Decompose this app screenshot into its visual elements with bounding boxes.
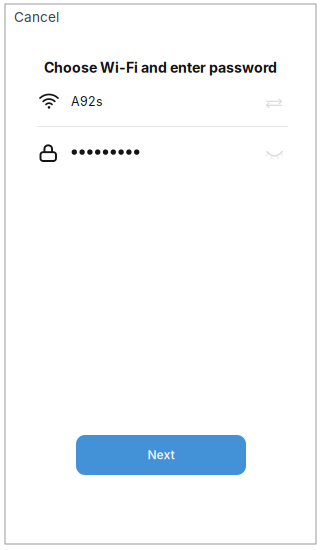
button[interactable]: Change network [259,92,289,115]
staticText: Choose Wi-Fi and enter password [44,59,277,76]
staticText: Next [147,448,174,462]
button[interactable]: Cancel [14,3,66,31]
staticText: Cancel [14,9,59,25]
button[interactable]: Show password [259,144,290,165]
staticText: A92s [71,94,103,109]
button[interactable]: Next [76,435,246,475]
